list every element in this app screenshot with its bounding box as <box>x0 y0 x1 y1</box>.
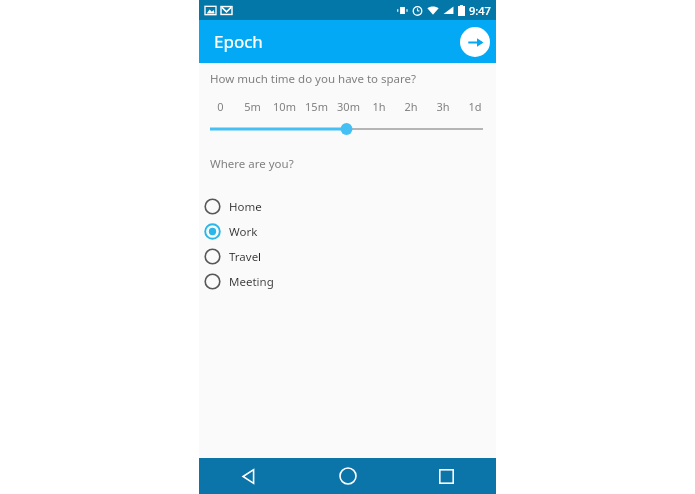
button[interactable]: Back <box>199 458 298 494</box>
staticText: 0 <box>217 99 224 114</box>
staticText: Work <box>229 224 258 240</box>
staticText: 5m <box>244 99 261 114</box>
button[interactable]: Travel <box>199 244 496 269</box>
staticText: 1h <box>372 99 386 114</box>
button[interactable]: Work <box>199 219 496 244</box>
staticText: Meeting <box>229 274 274 290</box>
staticText: Travel <box>229 249 262 265</box>
staticText: 15m <box>305 99 328 114</box>
button[interactable]: Next <box>460 27 490 57</box>
button[interactable]: Home <box>199 194 496 219</box>
staticText: 10m <box>273 99 296 114</box>
staticText: Home <box>229 199 262 215</box>
button[interactable]: Meeting <box>199 269 496 294</box>
staticText: 2h <box>404 99 418 114</box>
button[interactable] <box>199 120 496 138</box>
staticText: 30m <box>337 99 360 114</box>
button[interactable]: Home <box>298 458 397 494</box>
staticText: Where are you? <box>210 156 294 172</box>
staticText: 9:47 <box>469 3 491 18</box>
staticText: Epoch <box>214 30 263 53</box>
staticText: 3h <box>436 99 450 114</box>
staticText: How much time do you have to spare? <box>210 71 417 87</box>
staticText: 1d <box>468 99 482 114</box>
button[interactable]: Recents <box>397 458 496 494</box>
